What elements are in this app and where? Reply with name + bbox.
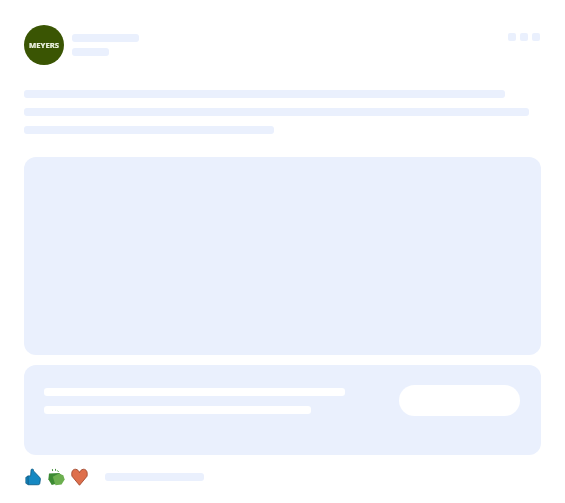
button[interactable]: Love bbox=[71, 468, 88, 486]
button[interactable]: More options bbox=[508, 33, 540, 41]
button[interactable] bbox=[24, 365, 541, 455]
button[interactable]: Like bbox=[25, 468, 42, 486]
button[interactable]: MEYERS bbox=[24, 25, 64, 65]
button[interactable] bbox=[399, 385, 520, 416]
button[interactable]: Celebrate bbox=[48, 468, 65, 486]
staticText: MEYERS bbox=[29, 40, 59, 50]
